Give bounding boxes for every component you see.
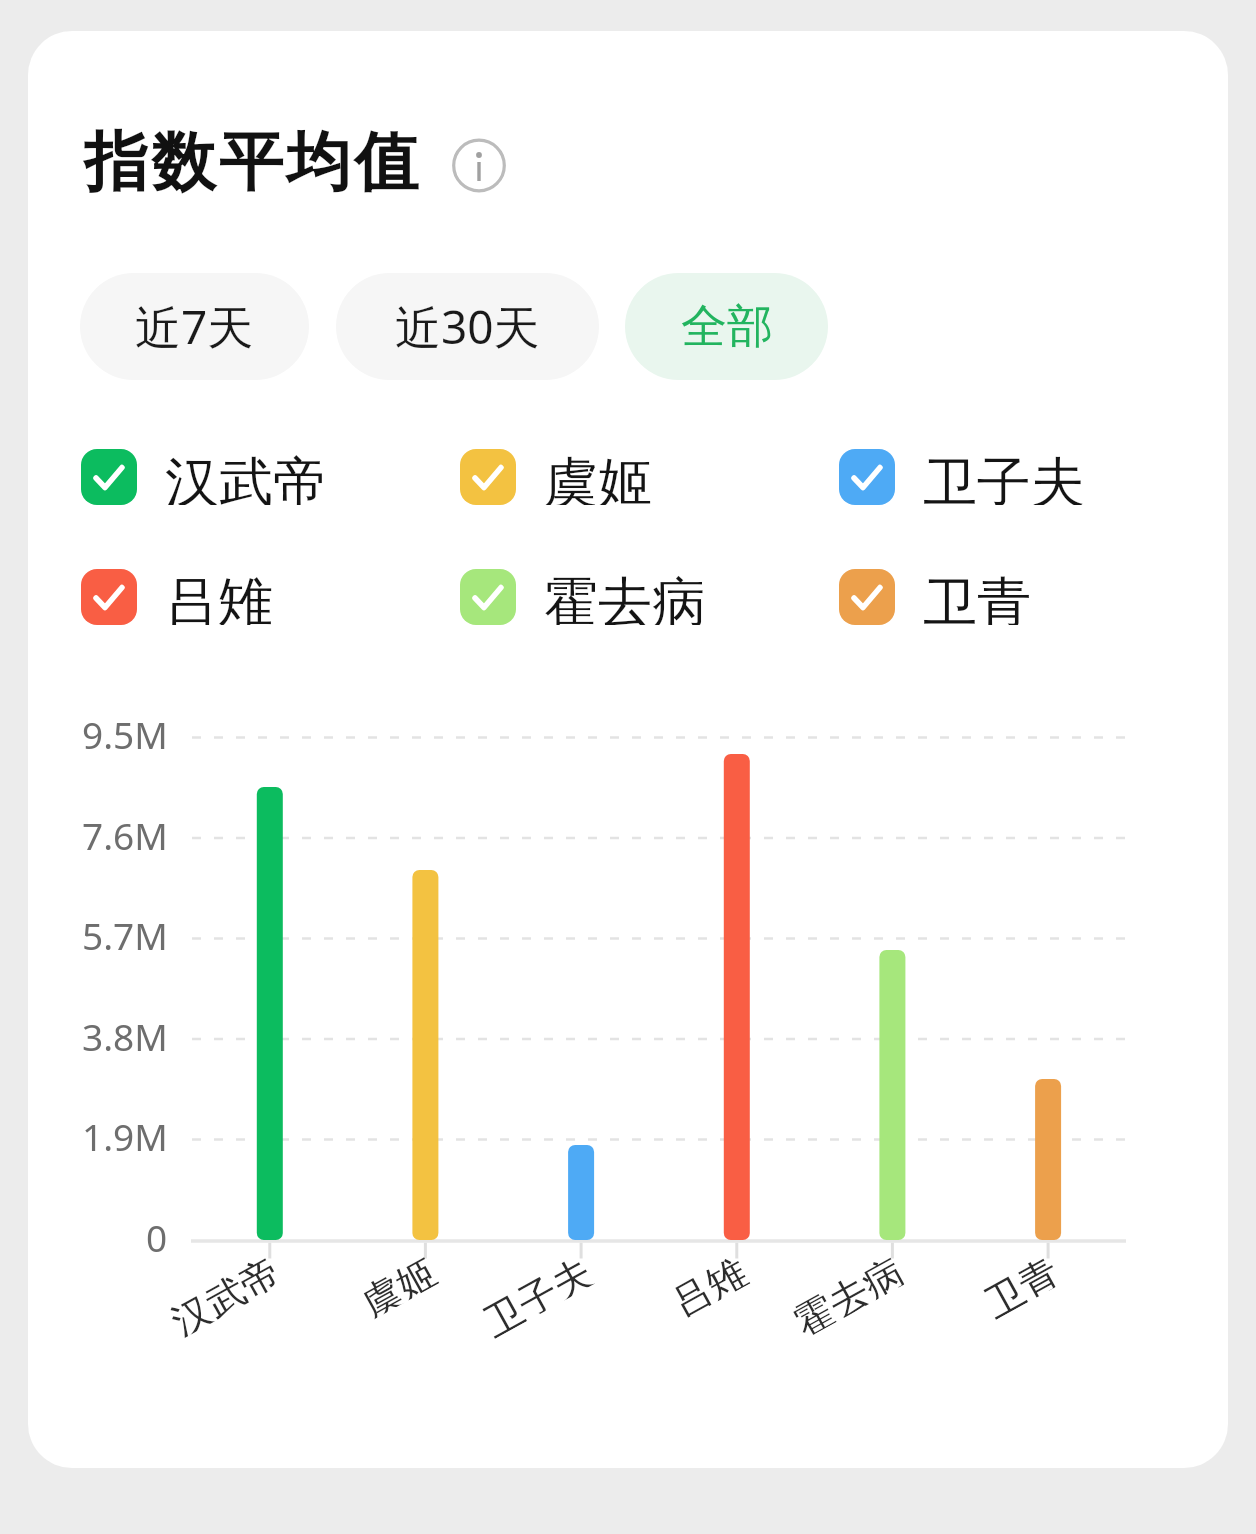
staticText: 全部	[681, 298, 773, 356]
staticText: 近30天	[395, 295, 540, 358]
staticText: 卫子夫	[475, 1247, 597, 1339]
button[interactable]: 近30天	[336, 273, 599, 380]
staticText: 5.7M	[82, 910, 168, 958]
button[interactable]: 卫子夫	[839, 449, 1085, 505]
button[interactable]: 汉武帝	[81, 449, 327, 505]
staticText: 近7天	[135, 295, 254, 358]
staticText: 霍去病	[786, 1247, 908, 1339]
staticText: 7.6M	[82, 810, 168, 858]
staticText: 3.8M	[82, 1011, 168, 1059]
button[interactable]: 卫青	[839, 569, 1031, 625]
staticText: 卫青	[976, 1247, 1064, 1320]
staticText: 虞姬	[544, 449, 652, 505]
staticText: 霍去病	[544, 569, 706, 625]
button[interactable]: 霍去病	[460, 569, 706, 625]
button[interactable]: 吕雉	[81, 569, 273, 625]
staticText: 卫青	[923, 569, 1031, 625]
staticText: 吕雉	[165, 569, 273, 625]
button[interactable]: 近7天	[80, 273, 309, 380]
button[interactable]	[449, 135, 510, 196]
staticText: 吕雉	[664, 1247, 752, 1320]
staticText: 1.9M	[82, 1111, 168, 1159]
button[interactable]: 虞姬	[460, 449, 652, 505]
staticText: 汉武帝	[163, 1247, 285, 1339]
staticText: 0	[146, 1212, 168, 1260]
staticText: 9.5M	[82, 709, 168, 757]
staticText: 卫子夫	[923, 449, 1085, 505]
staticText: 虞姬	[353, 1247, 441, 1320]
staticText: 指数平均值	[84, 122, 422, 203]
staticText: 汉武帝	[165, 449, 327, 505]
button[interactable]: 全部	[625, 273, 828, 380]
